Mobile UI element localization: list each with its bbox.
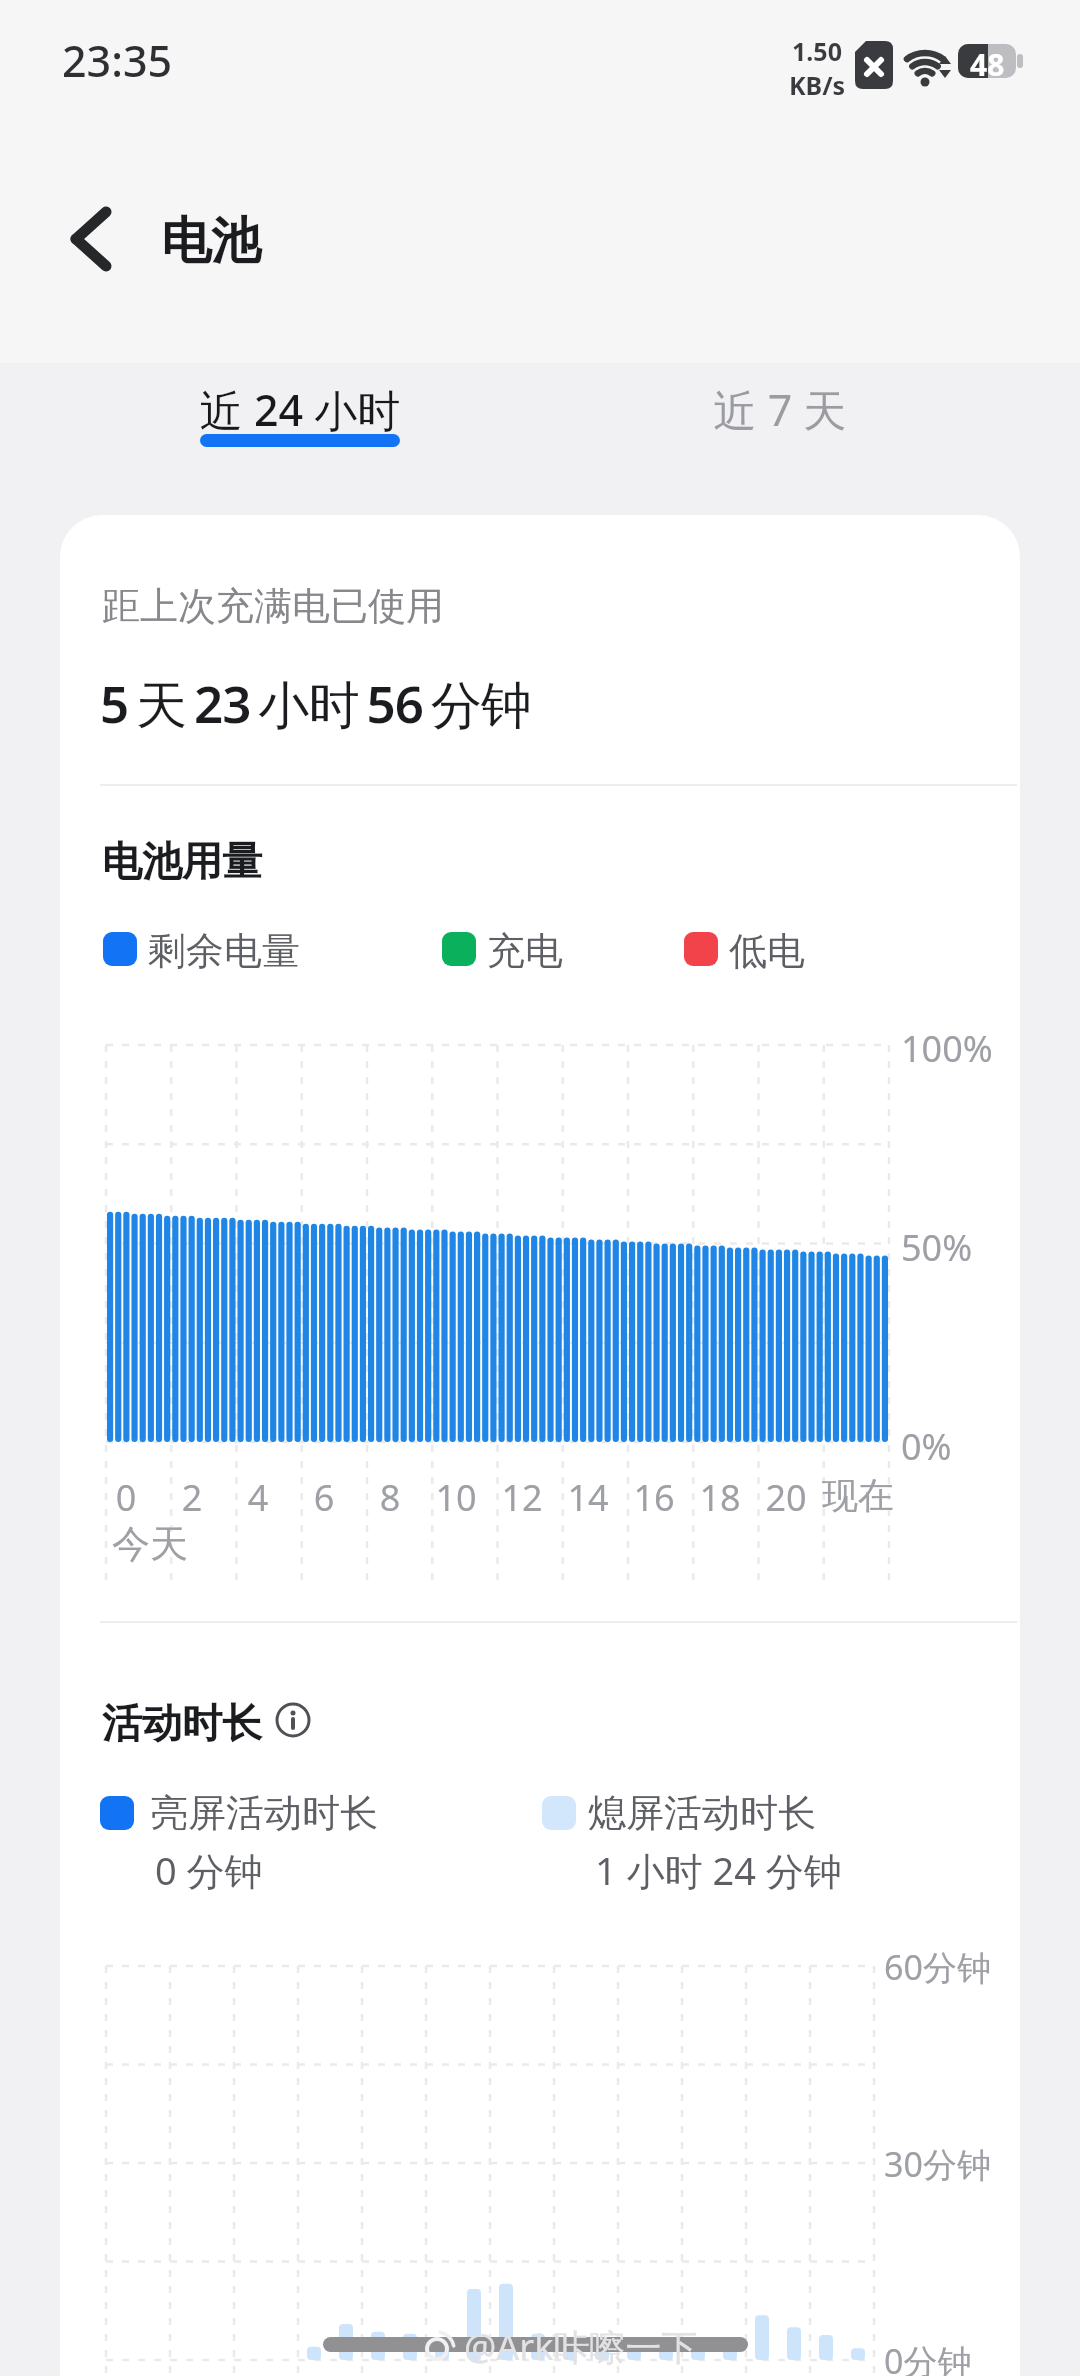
staticText: 60分钟 <box>884 1944 991 1990</box>
staticText: 熄屏活动时长 <box>588 1789 816 1837</box>
staticText: 14 <box>548 1473 628 1522</box>
staticText: 16 <box>614 1473 694 1522</box>
staticText: 10 <box>416 1473 496 1522</box>
staticText: 1 小时 24 分钟 <box>595 1844 842 1896</box>
staticText: 30分钟 <box>884 2141 991 2187</box>
staticText: 0 <box>86 1473 166 1522</box>
staticText: 18 <box>680 1473 760 1522</box>
staticText: 电池 <box>161 210 261 273</box>
staticText: 距上次充满电已使用 <box>102 582 444 630</box>
staticText: 低电 <box>729 927 805 975</box>
button[interactable] <box>48 190 138 286</box>
staticText: 0% <box>901 1422 952 1471</box>
staticText: 6 <box>284 1473 364 1522</box>
staticText: 23:35 <box>62 31 173 90</box>
staticText: 100% <box>901 1024 993 1073</box>
staticText: 今天 <box>112 1520 188 1568</box>
staticText: 8 <box>350 1473 430 1522</box>
staticText: 50% <box>901 1223 973 1272</box>
staticText: 5 天 23 小时 56 分钟 <box>100 668 532 738</box>
staticText: 12 <box>482 1473 562 1522</box>
staticText: 2 <box>152 1473 232 1522</box>
button[interactable]: 近 7 天 <box>650 363 910 463</box>
button[interactable] <box>90 1690 320 1750</box>
staticText: 0 分钟 <box>155 1844 263 1896</box>
staticText: 1.50 <box>792 34 842 68</box>
staticText: 电池用量 <box>102 836 262 886</box>
staticText: 4 <box>218 1473 298 1522</box>
staticText: 近 24 小时 <box>170 380 430 439</box>
staticText: 0分钟 <box>884 2338 972 2376</box>
staticText: 亮屏活动时长 <box>150 1789 378 1837</box>
staticText: 48 <box>970 44 1005 78</box>
staticText: 剩余电量 <box>148 927 300 975</box>
staticText: 近 7 天 <box>650 380 910 439</box>
staticText: @Ark咔嚓一下 <box>464 2322 698 2371</box>
staticText: KB/s <box>789 68 846 102</box>
staticText: 现在 <box>818 1473 898 1518</box>
button[interactable]: 近 24 小时 <box>170 363 430 463</box>
staticText: 20 <box>746 1473 826 1522</box>
staticText: 充电 <box>487 927 563 975</box>
staticText: 活动时长 <box>102 1698 262 1748</box>
